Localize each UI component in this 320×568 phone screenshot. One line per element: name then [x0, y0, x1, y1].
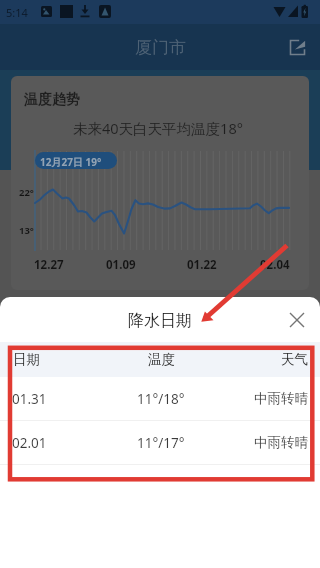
- staticText: 22°: [19, 186, 34, 199]
- button[interactable]: 02.01: [0, 421, 320, 464]
- staticText: 厦门市: [135, 37, 186, 58]
- staticText: 02.01: [12, 434, 47, 452]
- staticText: 温度趋势: [24, 91, 80, 109]
- staticText: 天气: [281, 351, 308, 368]
- staticText: 中雨转晴: [254, 390, 308, 407]
- staticText: 01.09: [106, 257, 136, 273]
- staticText: 13°: [19, 224, 34, 237]
- staticText: 日期: [13, 351, 40, 368]
- button[interactable]: Share: [282, 32, 312, 62]
- staticText: 12.27: [34, 257, 64, 273]
- button[interactable]: 01.31: [0, 377, 320, 420]
- staticText: 02.04: [260, 257, 290, 273]
- staticText: 12月27日 19°: [40, 155, 102, 169]
- button[interactable]: Close: [280, 303, 314, 337]
- staticText: 降水日期: [128, 311, 192, 331]
- staticText: 11°/17°: [137, 434, 185, 452]
- staticText: 01.31: [12, 390, 47, 408]
- staticText: 5:14: [6, 5, 28, 20]
- staticText: 01.22: [187, 257, 217, 273]
- staticText: 温度: [148, 351, 175, 368]
- staticText: 中雨转晴: [254, 434, 308, 451]
- staticText: 未来40天白天平均温度18°: [73, 118, 243, 138]
- staticText: 11°/18°: [137, 390, 185, 408]
